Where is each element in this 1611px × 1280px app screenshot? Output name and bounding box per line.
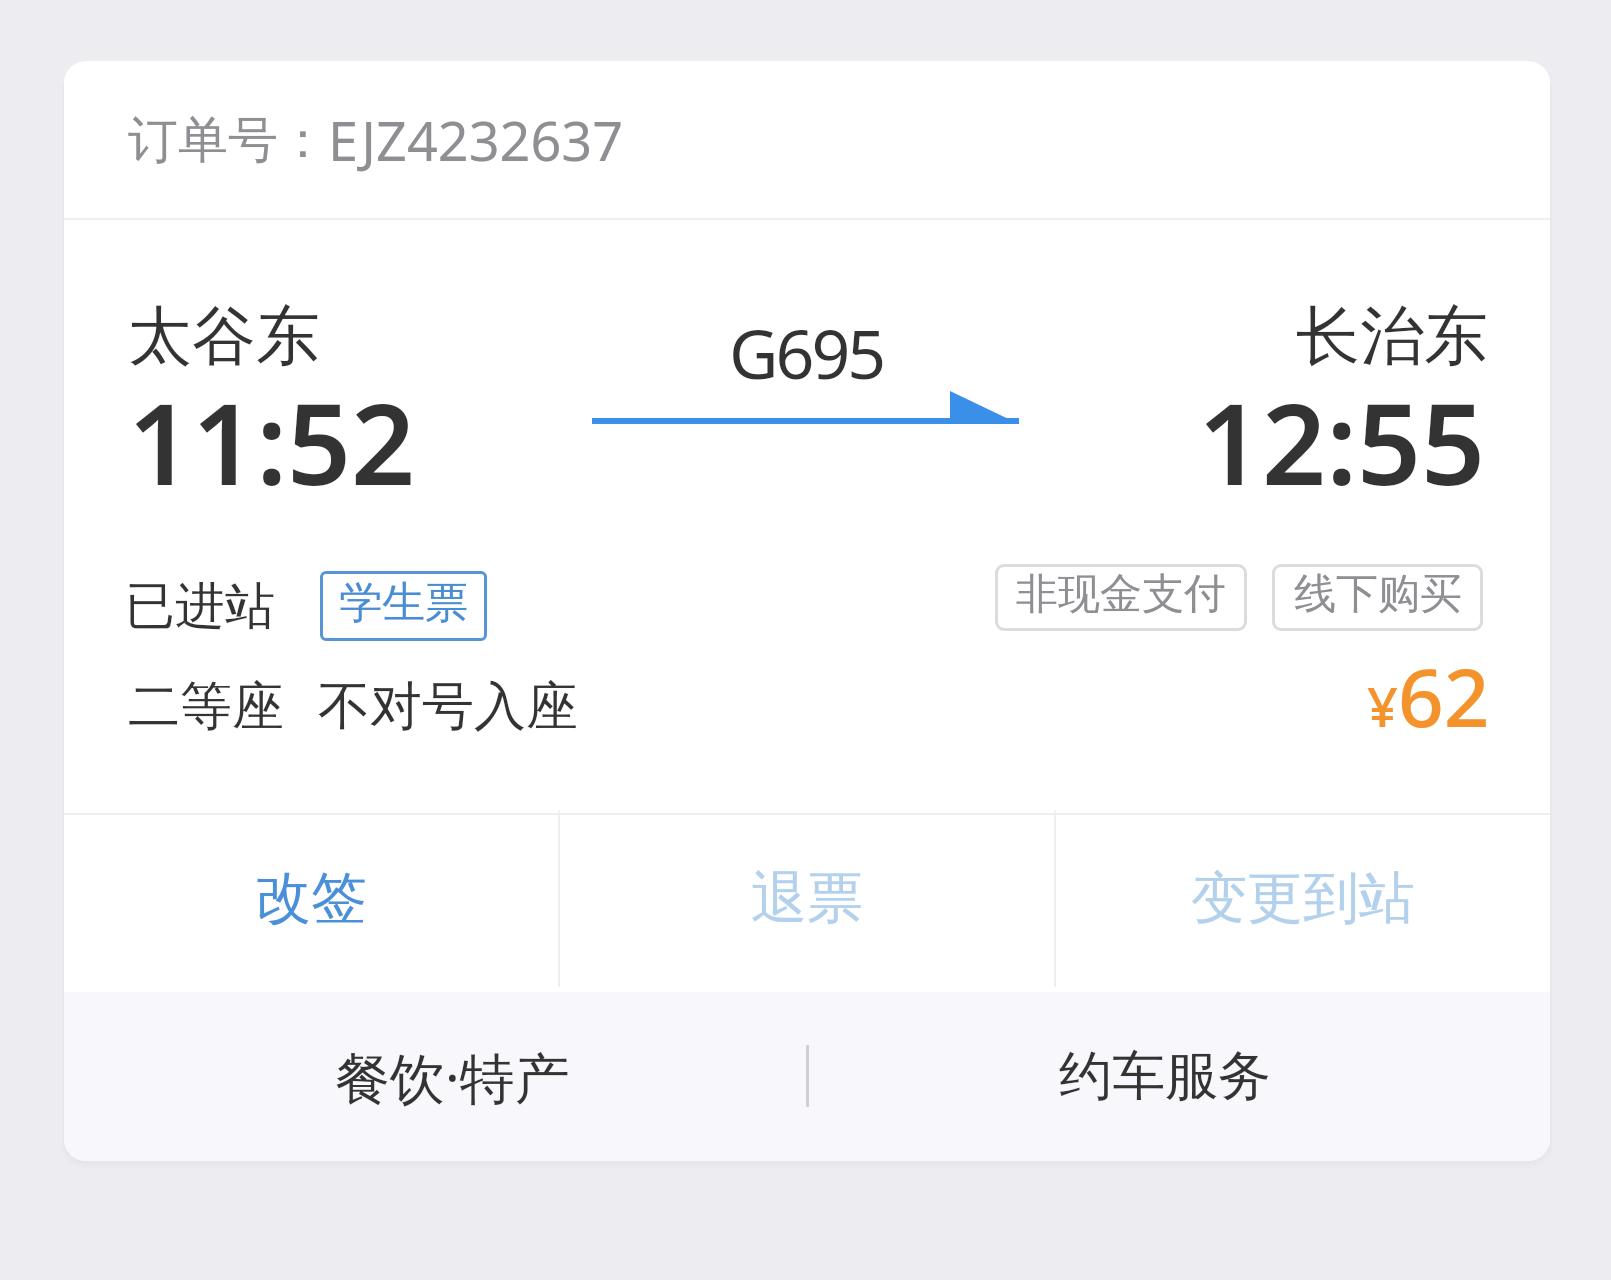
staticText: 已进站 [125, 575, 275, 638]
button[interactable]: 退票 [560, 810, 1054, 987]
staticText: 改签 [255, 863, 367, 934]
staticText: 长治东 [1296, 296, 1488, 377]
staticText: 餐饮·特产 [335, 1039, 570, 1114]
staticText: 11:52 [128, 365, 416, 518]
staticText: 退票 [751, 863, 863, 934]
staticText: 12:55 [1198, 365, 1486, 518]
staticText: 订单号： [128, 109, 328, 172]
button[interactable]: 变更到站 [1056, 810, 1550, 987]
staticText: ¥ [1367, 669, 1398, 743]
staticText: 62 [1398, 641, 1490, 750]
button[interactable]: 约车服务 [809, 992, 1550, 1161]
staticText: 不对号入座 [318, 674, 578, 740]
staticText: 学生票 [339, 576, 468, 630]
button[interactable]: 餐饮·特产 [64, 992, 808, 1161]
other: Direction of travel [580, 385, 1030, 433]
staticText: G695 [729, 306, 884, 399]
staticText: 变更到站 [1191, 863, 1415, 934]
button[interactable]: 线下购买 [1272, 564, 1483, 631]
staticText: 约车服务 [1059, 1043, 1271, 1110]
staticText: 线下购买 [1294, 568, 1462, 621]
staticText: 太谷东 [128, 296, 320, 377]
staticText: 二等座 [128, 674, 284, 740]
button[interactable]: 订单号： [64, 61, 1550, 218]
button[interactable]: 非现金支付 [995, 564, 1247, 631]
staticText: 非现金支付 [1016, 568, 1226, 621]
staticText: EJZ4232637 [328, 103, 624, 177]
button[interactable]: 改签 [64, 810, 558, 987]
button[interactable]: 学生票 [320, 571, 487, 641]
